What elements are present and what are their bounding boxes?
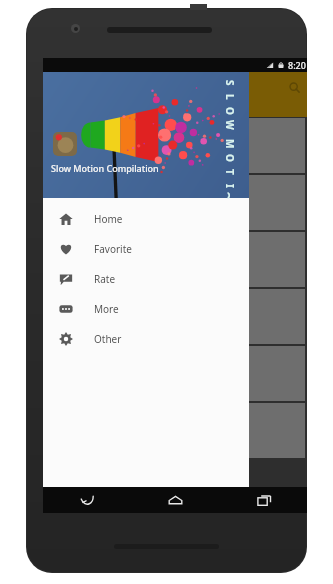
staticText: 8:20 [288, 59, 306, 71]
staticText: Slow motion topics! [57, 253, 149, 267]
staticText: O [227, 191, 232, 199]
button[interactable]: Best of the Slow [47, 289, 305, 344]
button[interactable]: Slow Motion Compilation [43, 72, 249, 198]
staticText: S [223, 80, 237, 86]
staticText: Slow Motion Compilation [51, 162, 159, 174]
button[interactable]: Recent apps [220, 487, 307, 513]
staticText: Best of the Slow [57, 310, 133, 324]
staticText: T [223, 169, 237, 175]
staticText: Slow motion monkies [57, 196, 158, 210]
staticText: M [223, 139, 237, 149]
button[interactable]: Back [43, 487, 131, 513]
button[interactable]: Other [43, 324, 249, 354]
staticText: Amazing slow motion [57, 139, 159, 153]
button[interactable]: Home [43, 204, 249, 234]
staticText: O [223, 154, 237, 162]
staticText: L [223, 94, 237, 100]
button[interactable]: Slow motion monkies [47, 175, 305, 230]
button[interactable]: More [43, 294, 249, 324]
staticText: O [223, 107, 237, 115]
button[interactable]: Home [131, 487, 220, 513]
staticText: W [223, 120, 237, 130]
button[interactable]: Slow motion with [47, 346, 305, 401]
button[interactable]: Favorite [43, 234, 249, 264]
button[interactable]: More slow clips [47, 403, 305, 458]
staticText: More [94, 302, 119, 316]
button[interactable]: Rate [43, 264, 249, 294]
staticText: Other [94, 332, 122, 346]
button[interactable]: Slow motion topics! [47, 232, 305, 287]
staticText: Home [94, 212, 123, 226]
button[interactable]: Search [284, 77, 304, 97]
button[interactable]: Amazing slow motion [47, 118, 305, 173]
staticText: Favorite [94, 242, 132, 256]
staticText: I [223, 184, 237, 188]
staticText: Rate [94, 272, 116, 286]
